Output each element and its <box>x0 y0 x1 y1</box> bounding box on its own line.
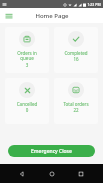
staticText: Cancelled <box>7 101 47 107</box>
staticText: 1:23 PM <box>87 2 101 7</box>
button[interactable]: Completed <box>54 27 98 73</box>
staticText: 22 <box>56 107 96 113</box>
button[interactable]: Home <box>44 166 60 182</box>
staticText: 0 <box>7 107 47 113</box>
staticText: 3 <box>7 62 47 68</box>
button[interactable]: Open navigation menu <box>4 11 14 21</box>
staticText: Emergency Close <box>31 148 72 155</box>
staticText: Completed <box>56 50 96 56</box>
staticText: 16 <box>56 56 96 62</box>
button[interactable]: Back <box>14 166 30 182</box>
staticText: Home Page <box>35 12 69 20</box>
button[interactable]: Cancelled <box>5 78 49 124</box>
button[interactable]: Recent apps <box>73 166 89 182</box>
button[interactable]: Total orders <box>54 78 98 124</box>
button[interactable]: Emergency Close <box>8 145 95 157</box>
button[interactable]: Orders in queue <box>5 27 49 73</box>
staticText: Orders in queue <box>7 50 47 62</box>
staticText: Total orders <box>56 101 96 107</box>
